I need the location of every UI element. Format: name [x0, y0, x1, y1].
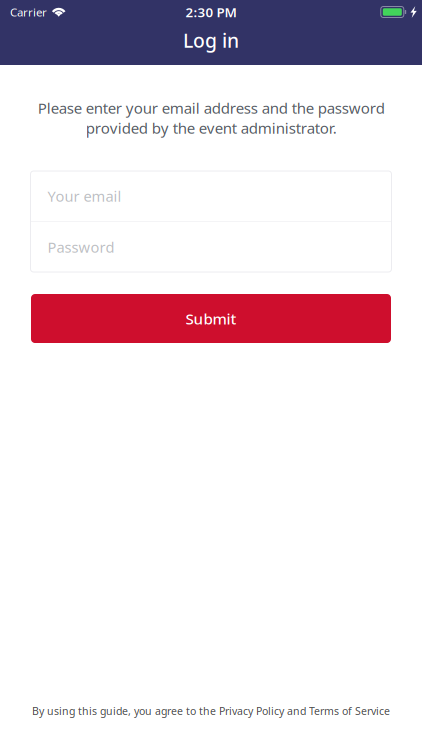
staticText: Carrier	[10, 4, 47, 20]
staticText: Terms of Service	[309, 704, 390, 718]
staticText: Log in	[183, 27, 239, 53]
staticText: Please enter your email address and the …	[37, 98, 384, 138]
button[interactable]: Terms of Service	[309, 704, 390, 718]
staticText: Password	[47, 237, 114, 257]
button[interactable]: Password	[30, 222, 391, 272]
staticText: 2:30 PM	[185, 3, 236, 21]
button[interactable]: Submit	[31, 294, 391, 343]
staticText: and	[284, 704, 309, 718]
staticText: Your email	[47, 186, 121, 206]
staticText: Privacy Policy	[219, 704, 284, 718]
staticText: Submit	[185, 308, 236, 329]
staticText: By using this guide, you agree to the	[32, 704, 219, 718]
button[interactable]: Your email	[30, 171, 391, 221]
button[interactable]: Privacy Policy	[219, 704, 284, 718]
